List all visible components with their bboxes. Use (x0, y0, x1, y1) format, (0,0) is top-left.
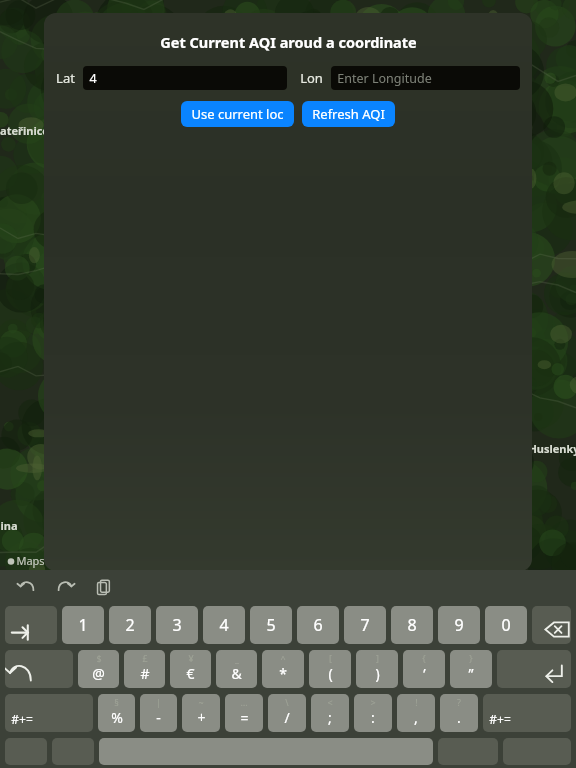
staticText: 6 (313, 614, 323, 636)
button[interactable]: 4 (203, 606, 245, 644)
button[interactable]: Enter Longitude (331, 66, 520, 90)
staticText: / (284, 708, 290, 727)
staticText: 5 (266, 614, 276, 636)
button[interactable]: Globe (5, 738, 47, 765)
staticText: { (422, 652, 426, 664)
staticText: ina (0, 518, 18, 533)
staticText: < (327, 696, 333, 708)
button[interactable]: Shift (5, 650, 73, 688)
button[interactable]: #+= (483, 694, 571, 732)
staticText: ateřinice (0, 123, 49, 138)
button[interactable]: Undo (14, 574, 40, 600)
staticText: £ (142, 652, 148, 664)
staticText: ( (328, 664, 333, 683)
staticText: #+= (489, 711, 511, 727)
button[interactable]: 5 (250, 606, 292, 644)
staticText: € (186, 664, 195, 683)
staticText: | (156, 696, 161, 708)
staticText: 7 (360, 614, 370, 636)
button[interactable]: ~ (182, 694, 220, 732)
button[interactable]: § (98, 694, 135, 732)
staticText: 2 (125, 614, 135, 636)
button[interactable]: _ (216, 650, 257, 688)
staticText: = (240, 708, 249, 727)
staticText: # (140, 664, 150, 683)
staticText: Get Current AQI aroud a coordinate (160, 32, 417, 52)
button[interactable]: Tab (5, 606, 57, 644)
staticText: ^ (280, 652, 286, 664)
staticText: ¥ (188, 652, 194, 664)
button[interactable]: Paste (90, 574, 116, 600)
button[interactable]: Use current loc (181, 101, 294, 127)
button[interactable]: ! (397, 694, 435, 732)
staticText: … (240, 696, 248, 708)
button[interactable]: } (450, 650, 492, 688)
button[interactable]: Space (99, 738, 433, 765)
button[interactable]: < (311, 694, 349, 732)
staticText: ’ (423, 664, 426, 683)
staticText: 4 (89, 70, 97, 87)
button[interactable]: | (140, 694, 177, 732)
staticText: _ (235, 652, 239, 664)
staticText: - (156, 708, 161, 727)
button[interactable]: 8 (391, 606, 433, 644)
staticText: . (457, 708, 461, 727)
staticText: ! (415, 696, 418, 708)
staticText: $ (96, 652, 102, 664)
staticText: , (414, 708, 418, 727)
staticText: Lon (300, 69, 323, 87)
button[interactable]: > (354, 694, 392, 732)
staticText: @ (92, 664, 105, 683)
staticText: 0 (501, 614, 511, 636)
button[interactable]: [ (309, 650, 351, 688)
staticText: 4 (219, 614, 229, 636)
button[interactable]: Emoji (52, 738, 94, 765)
button[interactable]: \ (268, 694, 306, 732)
staticText: % (111, 708, 123, 727)
button[interactable]: 0 (485, 606, 527, 644)
button[interactable]: 3 (156, 606, 198, 644)
button[interactable]: Refresh AQI (302, 101, 395, 127)
staticText: > (370, 696, 376, 708)
button[interactable]: Redo (52, 574, 78, 600)
button[interactable]: 4 (83, 66, 287, 90)
button[interactable]: #+= (5, 694, 93, 732)
staticText: + (197, 708, 206, 727)
button[interactable]: ? (440, 694, 478, 732)
staticText: } (469, 652, 473, 664)
staticText: \ (285, 696, 289, 708)
button[interactable]: Return (497, 650, 571, 688)
staticText: ; (328, 708, 332, 727)
staticText: Enter Longitude (337, 70, 432, 87)
button[interactable]: { (403, 650, 445, 688)
button[interactable]: £ (124, 650, 165, 688)
staticText: 3 (172, 614, 182, 636)
button[interactable]: 6 (297, 606, 339, 644)
button[interactable]: $ (78, 650, 119, 688)
staticText: Huslenky (528, 441, 576, 456)
staticText: & (231, 664, 242, 683)
staticText: 9 (454, 614, 464, 636)
button[interactable]: Backspace (532, 606, 571, 644)
staticText: : (371, 708, 375, 727)
button[interactable]: 7 (344, 606, 386, 644)
button[interactable]: 2 (109, 606, 151, 644)
button[interactable]: ] (356, 650, 398, 688)
button[interactable]: … (225, 694, 263, 732)
button[interactable]: ^ (262, 650, 304, 688)
staticText: 8 (407, 614, 417, 636)
staticText: ] (376, 652, 379, 664)
button[interactable]: ¥ (170, 650, 211, 688)
button[interactable]: 9 (438, 606, 480, 644)
button[interactable]: 1 (62, 606, 104, 644)
staticText: #+= (11, 711, 33, 727)
staticText: ) (375, 664, 380, 683)
staticText: § (114, 696, 119, 708)
staticText: * (279, 664, 287, 683)
staticText: ” (468, 664, 474, 683)
staticText: ~ (198, 696, 204, 708)
staticText: ? (457, 696, 461, 708)
staticText: Lat (56, 69, 75, 87)
